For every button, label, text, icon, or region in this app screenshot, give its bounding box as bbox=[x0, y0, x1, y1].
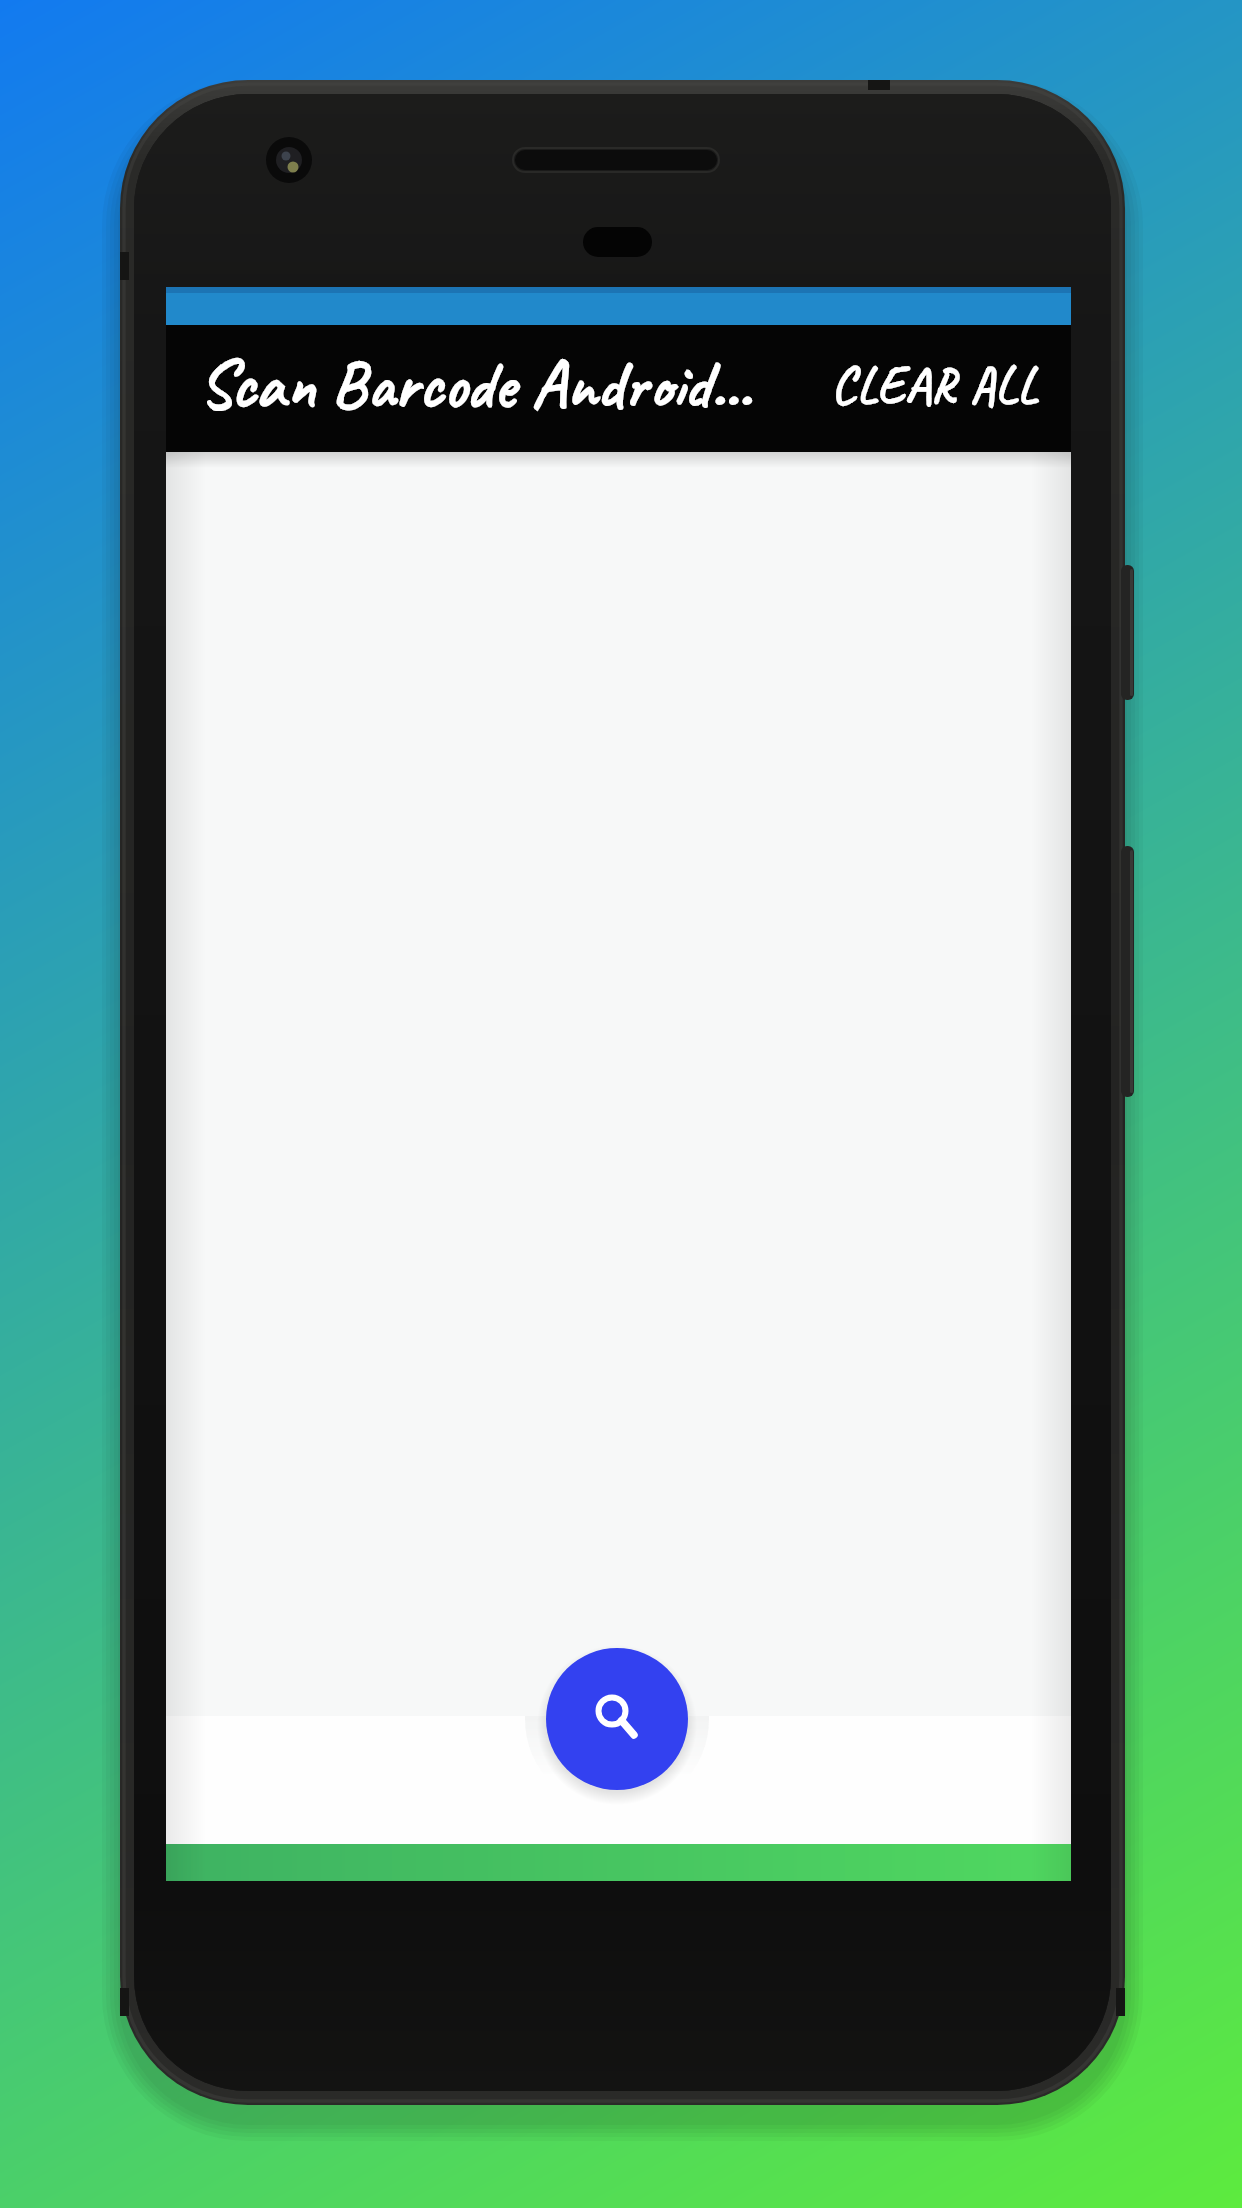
staticText: CLEAR ALL bbox=[831, 352, 1039, 418]
button[interactable]: CLEAR ALL bbox=[810, 340, 1060, 430]
staticText: Scan Barcode Android... bbox=[199, 342, 752, 428]
button[interactable] bbox=[546, 1648, 688, 1790]
